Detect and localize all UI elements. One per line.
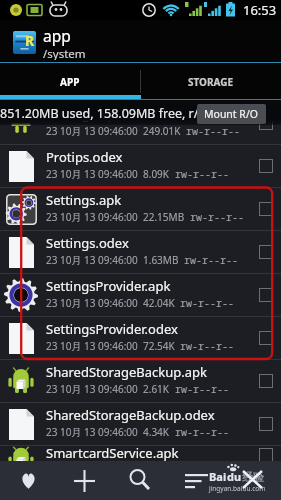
staticText: SharedStorageBackup.odex xyxy=(46,406,215,424)
staticText: 经验 xyxy=(242,470,264,484)
button[interactable]: Favorites xyxy=(0,461,56,500)
staticText: rw-r--r-- xyxy=(180,296,234,310)
staticText: 72.54K xyxy=(143,339,175,353)
button[interactable]: Sort xyxy=(168,461,224,500)
staticText: 23 10月 13 09:46:00 xyxy=(46,382,138,396)
staticText: Protips.odex xyxy=(46,148,123,166)
staticText: 249.01K xyxy=(143,124,181,138)
button[interactable]: APP xyxy=(0,63,140,100)
button[interactable]: Settings.apk xyxy=(0,188,281,230)
button[interactable]: More xyxy=(224,461,280,500)
button[interactable]: Select xyxy=(259,448,273,461)
button[interactable]: Select xyxy=(259,116,273,130)
staticText: rw-r--r-- xyxy=(175,425,229,439)
staticText: SettingsProvider.odex xyxy=(46,320,178,338)
staticText: 2.61K xyxy=(143,382,170,396)
staticText: 42.04K xyxy=(143,296,175,310)
staticText: APP xyxy=(60,75,80,89)
staticText: Package.apk xyxy=(46,105,123,123)
staticText: 23 10月 13 09:46:00 xyxy=(46,167,138,181)
button[interactable]: SettingsProvider.apk xyxy=(0,274,281,316)
staticText: 22.15MB xyxy=(143,210,185,224)
button[interactable]: Select xyxy=(259,331,273,345)
staticText: R xyxy=(25,31,35,50)
staticText: 851.20MB used, 158.09MB free, r/w xyxy=(0,105,209,122)
staticText: Settings.odex xyxy=(46,234,129,252)
staticText: Bai xyxy=(209,469,227,484)
staticText: 23 10月 13 09:46:00 xyxy=(46,124,138,138)
button[interactable]: Select xyxy=(259,245,273,259)
button[interactable]: STORAGE xyxy=(140,63,281,100)
staticText: rw-r--r-- xyxy=(175,382,229,396)
button[interactable]: Select xyxy=(259,288,273,302)
staticText: du xyxy=(227,469,242,484)
staticText: Settings.apk xyxy=(46,191,122,209)
button[interactable]: Select xyxy=(259,159,273,173)
staticText: 23 10月 13 09:46:00 xyxy=(46,253,138,267)
button[interactable]: R xyxy=(0,20,281,63)
button[interactable]: SmartcardService.apk xyxy=(0,446,281,461)
staticText: /system xyxy=(43,46,86,60)
staticText: 1.63MB xyxy=(143,253,179,267)
staticText: 4.34K xyxy=(143,425,170,439)
button[interactable]: Package.apk xyxy=(0,102,281,144)
staticText: 23 10月 13 09:46:00 xyxy=(46,296,138,310)
button[interactable]: Select xyxy=(259,374,273,388)
button[interactable]: Select xyxy=(259,202,273,216)
staticText: SmartcardService.apk xyxy=(46,444,179,461)
staticText: 23 10月 13 09:46:00 xyxy=(46,339,138,353)
staticText: rw-r--r-- xyxy=(180,339,234,353)
staticText: 8.09K xyxy=(143,167,170,181)
button[interactable]: Mount R/O xyxy=(197,104,266,124)
staticText: rw-r--r-- xyxy=(175,167,229,181)
staticText: Mount R/O xyxy=(204,107,259,121)
button[interactable]: SharedStorageBackup.odex xyxy=(0,403,281,445)
button[interactable]: Settings.odex xyxy=(0,231,281,273)
button[interactable]: Search xyxy=(112,461,168,500)
staticText: jingyan.baidu.com xyxy=(209,484,266,493)
staticText: 23 10月 13 09:46:00 xyxy=(46,210,138,224)
staticText: 23 10月 13 09:46:00 xyxy=(46,425,138,439)
staticText: rw-r--r-- xyxy=(184,253,238,267)
staticText: rw-r--r-- xyxy=(190,210,244,224)
button[interactable]: Select xyxy=(259,417,273,431)
button[interactable]: SharedStorageBackup.apk xyxy=(0,360,281,402)
staticText: STORAGE xyxy=(188,75,234,89)
staticText: SettingsProvider.apk xyxy=(46,277,171,295)
staticText: SharedStorageBackup.apk xyxy=(46,363,207,381)
button[interactable]: Protips.odex xyxy=(0,145,281,187)
staticText: app xyxy=(43,25,71,46)
button[interactable]: Add xyxy=(56,461,112,500)
staticText: 16:53 xyxy=(243,1,277,19)
staticText: rw-r--r-- xyxy=(186,124,240,138)
button[interactable]: SettingsProvider.odex xyxy=(0,317,281,359)
